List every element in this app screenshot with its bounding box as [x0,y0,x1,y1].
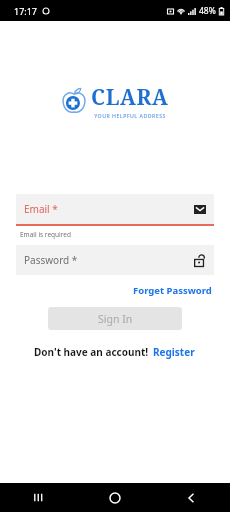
staticText: 17:17 [14,5,38,17]
button[interactable]: Forget Password [131,282,214,299]
button[interactable]: Sign In [48,307,182,330]
staticText: Don't have an account! [34,345,149,359]
staticText: YOUR HELPFUL ADDRESS [94,112,166,119]
button[interactable]: Email * [16,194,214,226]
staticText: Sign In [98,312,133,326]
button[interactable]: Home [76,483,153,512]
button[interactable]: Password * [16,245,214,275]
staticText: Email * [24,202,194,216]
staticText: Password * [24,253,192,267]
button[interactable]: Back [153,483,230,512]
staticText: Email is required [20,230,71,239]
staticText: 48% [199,5,216,17]
button[interactable]: Register [152,343,196,361]
button[interactable]: Show password [192,253,206,267]
staticText: CLARA [91,83,169,112]
button[interactable]: Recent apps [0,483,76,512]
